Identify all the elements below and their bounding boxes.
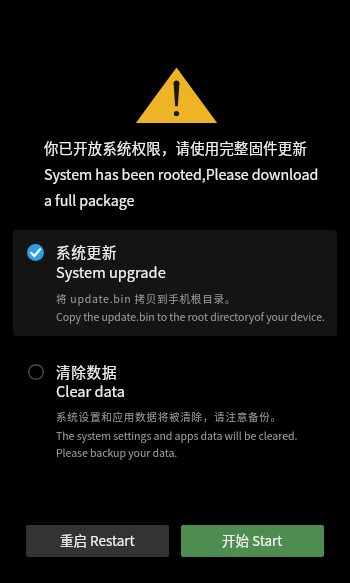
staticText: Clear data <box>56 381 125 400</box>
staticText: The system settings and apps data will b… <box>56 426 298 460</box>
other: Clear data, not selected <box>28 364 44 380</box>
staticText: 系统更新 <box>56 242 118 261</box>
staticText: Copy the update.bin to the root director… <box>56 307 325 324</box>
staticText: 将 update.bin 拷贝到手机根目录。 <box>56 289 237 306</box>
staticText: System upgrade <box>56 262 166 281</box>
button[interactable]: 重启 Restart <box>26 525 169 557</box>
other: System upgrade, selected <box>27 244 44 261</box>
staticText: 重启 Restart <box>60 532 135 550</box>
staticText: 你已开放系统权限，请使用完整固件更新 System has been roote… <box>44 133 319 211</box>
button[interactable]: Clear data, not selected <box>13 355 337 465</box>
button[interactable]: 开始 Start <box>181 525 324 557</box>
other: Warning <box>138 66 215 123</box>
staticText: 系统设置和应用数据将被清除，请注意备份。 <box>56 407 282 424</box>
button[interactable]: System upgrade, selected <box>13 230 337 336</box>
staticText: 开始 Start <box>222 532 283 550</box>
staticText: 清除数据 <box>56 362 118 381</box>
